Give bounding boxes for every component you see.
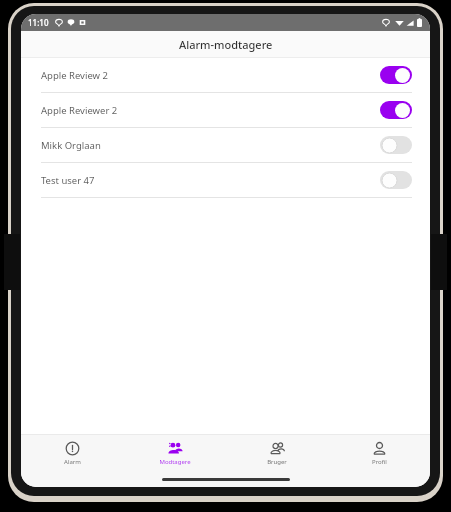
button[interactable]: On [380,101,412,119]
button[interactable]: On [380,66,412,84]
button[interactable]: Apple Reviewer 2 [21,93,430,128]
button[interactable]: Off [380,136,412,154]
button[interactable]: Off [380,171,412,189]
button[interactable]: Alarm [21,435,124,471]
button[interactable]: Test user 47 [21,163,430,198]
button[interactable]: Modtagere [124,435,226,471]
staticText: Test user 47 [41,174,95,187]
staticText: Profil [372,458,387,466]
button[interactable]: Apple Review 2 [21,58,430,93]
button[interactable]: Profil [328,435,430,471]
button[interactable]: Bruger [226,435,328,471]
button[interactable]: Mikk Orglaan [21,128,430,163]
staticText: Alarm-modtagere [179,37,273,52]
staticText: Mikk Orglaan [41,139,101,152]
staticText: 11:10 [28,17,49,28]
staticText: Apple Reviewer 2 [41,104,118,117]
staticText: Modtagere [159,458,191,466]
staticText: Alarm [64,458,81,466]
staticText: Apple Review 2 [41,69,108,82]
staticText: Bruger [267,458,287,466]
